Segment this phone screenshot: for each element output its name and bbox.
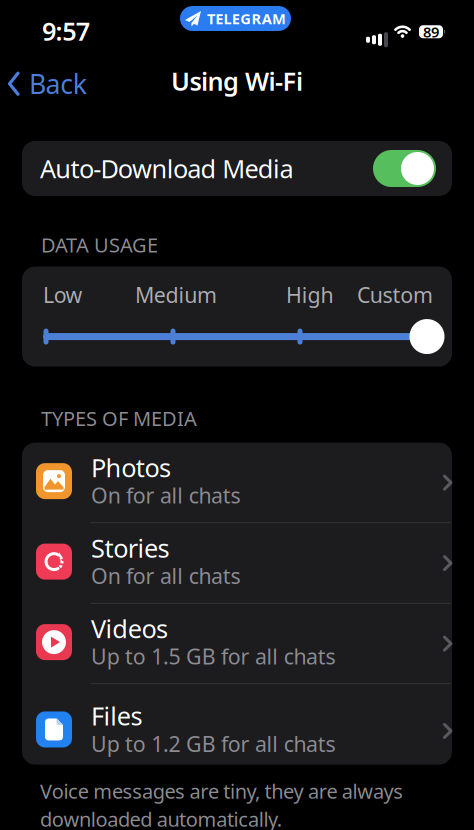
staticText: High xyxy=(286,281,333,309)
staticText: On for all chats xyxy=(91,562,240,590)
staticText: On for all chats xyxy=(91,481,240,509)
button[interactable]: Photos xyxy=(22,443,452,523)
staticText: TELEGRAM xyxy=(207,9,286,28)
staticText: 89 xyxy=(423,22,439,41)
staticText: Auto-Download Media xyxy=(40,152,293,185)
button[interactable]: Data usage: Custom xyxy=(22,267,444,354)
button[interactable]: Stories xyxy=(22,523,452,604)
staticText: Up to 1.2 GB for all chats xyxy=(91,729,335,758)
staticText: Back xyxy=(29,66,87,101)
button[interactable]: Return to Telegram xyxy=(180,6,291,31)
staticText: Low xyxy=(43,281,83,309)
staticText: Photos xyxy=(91,451,171,484)
staticText: Voice messages are tiny, they are always xyxy=(40,778,403,804)
staticText: DATA USAGE xyxy=(41,231,158,258)
staticText: Custom xyxy=(357,281,433,309)
staticText: downloaded automatically. xyxy=(40,806,282,830)
button[interactable]: Auto-Download Media xyxy=(22,141,452,196)
staticText: Videos xyxy=(91,612,168,645)
staticText: Files xyxy=(91,699,142,733)
button[interactable]: Files xyxy=(22,684,452,765)
button[interactable]: Back xyxy=(0,52,87,101)
button[interactable]: Videos xyxy=(22,604,452,684)
staticText: Medium xyxy=(135,281,217,309)
staticText: Using Wi-Fi xyxy=(171,64,303,98)
staticText: Stories xyxy=(91,531,170,565)
staticText: 9:57 xyxy=(42,14,90,48)
staticText: TYPES OF MEDIA xyxy=(41,405,197,432)
staticText: Up to 1.5 GB for all chats xyxy=(91,642,335,670)
